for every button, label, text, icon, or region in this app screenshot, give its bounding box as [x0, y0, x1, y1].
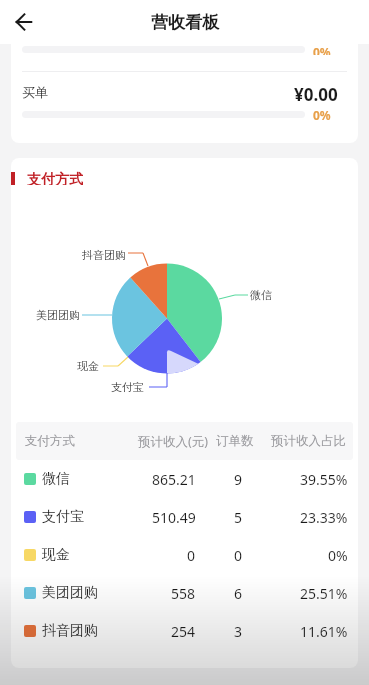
button[interactable]: 美团团购: [11, 574, 358, 612]
button[interactable]: 现金: [11, 536, 358, 574]
staticText: 支付宝: [111, 380, 144, 394]
staticText: 预计收入(元): [138, 433, 209, 450]
staticText: 营收看板: [151, 12, 219, 33]
staticText: 预计收入占比: [271, 433, 346, 449]
staticText: 3: [234, 622, 243, 641]
staticText: 抖音团购: [82, 248, 126, 262]
staticText: 买单: [22, 84, 48, 100]
staticText: 510.49: [152, 508, 196, 527]
staticText: 0: [234, 546, 243, 565]
button[interactable]: 微信: [11, 460, 358, 498]
staticText: 微信: [42, 470, 70, 488]
staticText: 订单数: [216, 433, 254, 449]
staticText: 23.33%: [300, 508, 348, 527]
staticText: 美团团购: [42, 584, 98, 602]
staticText: 25.51%: [300, 584, 348, 603]
staticText: 865.21: [152, 470, 196, 489]
staticText: 0%: [328, 546, 348, 565]
staticText: ¥0.00: [294, 83, 338, 101]
staticText: 抖音团购: [42, 622, 98, 640]
button[interactable]: 支付宝: [11, 498, 358, 536]
staticText: 现金: [42, 546, 70, 564]
staticText: 微信: [250, 288, 272, 302]
staticText: 11.61%: [300, 622, 348, 641]
staticText: 美团团购: [36, 308, 80, 322]
staticText: 支付宝: [42, 508, 84, 526]
button[interactable]: Back: [7, 5, 41, 39]
staticText: 254: [171, 622, 196, 641]
staticText: 39.55%: [300, 470, 348, 489]
staticText: 现金: [77, 359, 99, 373]
staticText: 0%: [313, 107, 331, 121]
staticText: 9: [234, 470, 243, 489]
staticText: 558: [171, 584, 196, 603]
staticText: 0: [187, 546, 196, 565]
staticText: 5: [234, 508, 243, 527]
staticText: 6: [234, 584, 243, 603]
staticText: 支付方式: [27, 171, 83, 185]
button[interactable]: 抖音团购: [11, 612, 358, 650]
staticText: 0%: [313, 44, 331, 55]
staticText: 支付方式: [25, 433, 75, 449]
